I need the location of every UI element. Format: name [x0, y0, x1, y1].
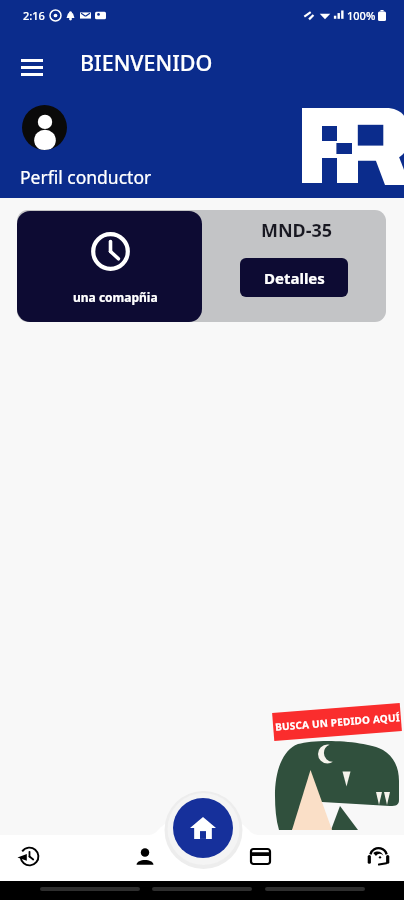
button[interactable]: Menu — [11, 46, 53, 88]
button[interactable]: Detalles — [240, 258, 348, 297]
staticText: BIENVENIDO — [80, 48, 213, 77]
button[interactable]: Profile picture — [22, 105, 67, 150]
button[interactable]: Profile — [122, 834, 167, 879]
button[interactable]: Payments — [238, 834, 283, 879]
button[interactable]: History — [7, 834, 52, 879]
staticText: una comapñia — [73, 289, 158, 305]
staticText: MND-35 — [261, 218, 333, 243]
staticText: 2:16 — [23, 8, 45, 23]
button[interactable]: Support — [356, 834, 401, 879]
button[interactable]: una comapñia — [17, 211, 202, 322]
staticText: 100% — [347, 8, 376, 23]
staticText: BUSCA UN PEDIDO AQUÍ — [275, 710, 400, 734]
staticText: Perfil conductor — [20, 165, 152, 189]
button[interactable]: Home — [173, 798, 233, 858]
staticText: Detalles — [264, 268, 325, 288]
